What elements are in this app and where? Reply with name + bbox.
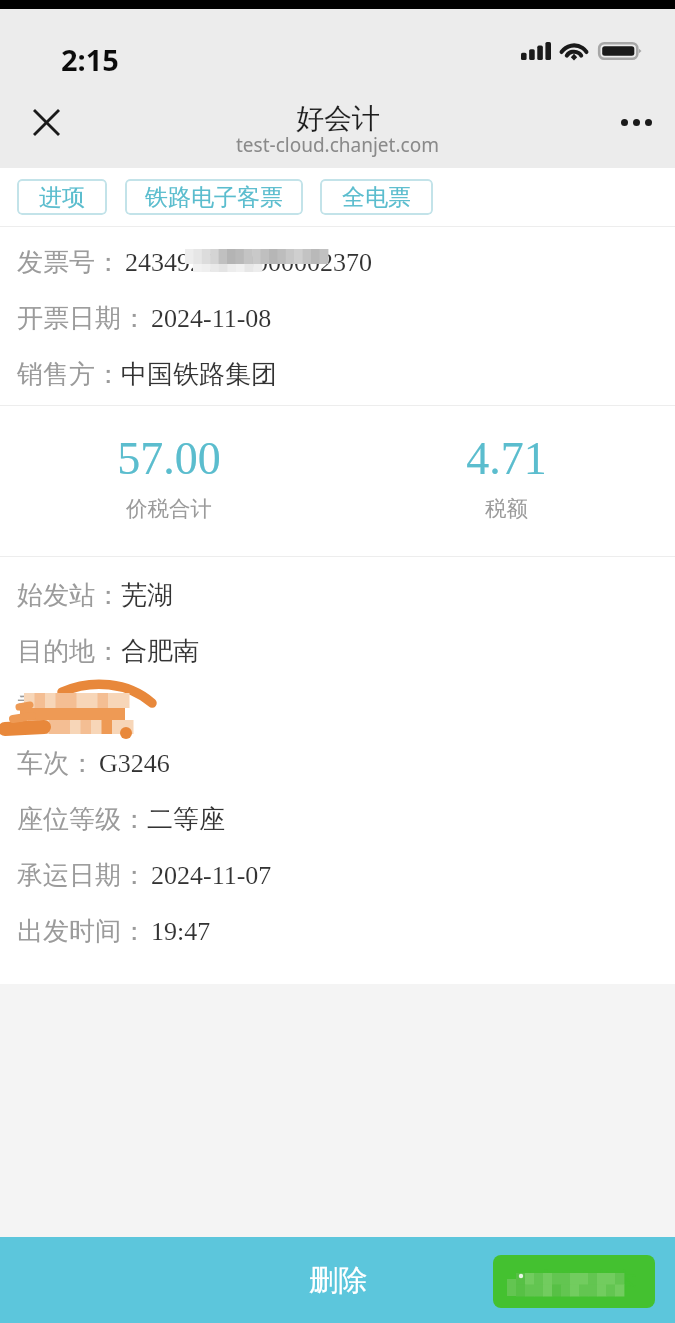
staticText: 19:47 <box>151 917 211 946</box>
staticText: 承运日期： <box>17 859 147 892</box>
button[interactable]: 导入到账本 <box>493 1255 655 1308</box>
staticText: 价税合计 <box>126 495 212 522</box>
button[interactable]: 进项 <box>17 179 107 215</box>
staticText: 车次： <box>17 747 95 780</box>
staticText: 芜湖 <box>121 579 173 612</box>
staticText: test-cloud.chanjet.com <box>236 132 439 158</box>
staticText: 铁路电子客票 <box>145 183 283 212</box>
staticText: 4.71 <box>466 433 547 484</box>
staticText: G3246 <box>99 749 170 778</box>
staticText: 2024-11-07 <box>151 861 272 890</box>
staticText: 进项 <box>39 183 85 212</box>
staticText: 57.00 <box>117 433 221 484</box>
staticText: 出发时间： <box>17 915 147 948</box>
staticText: 二等座 <box>147 803 225 836</box>
button[interactable]: More options <box>610 96 663 149</box>
staticText: 开票日期： <box>17 302 147 335</box>
staticText: 目的地： <box>17 635 121 668</box>
button[interactable]: 删除 <box>275 1250 401 1311</box>
staticText: 税额 <box>485 495 528 522</box>
staticText: 2:15 <box>61 40 119 79</box>
button[interactable]: 全电票 <box>320 179 433 215</box>
staticText: 好会计 <box>296 101 380 136</box>
staticText: 导入到账本 <box>512 1266 637 1297</box>
button[interactable]: 铁路电子客票 <box>125 179 303 215</box>
button[interactable]: Close <box>20 96 73 149</box>
staticText: 中国铁路集团 <box>121 358 277 391</box>
staticText: 乘车人： <box>17 691 121 724</box>
staticText: 座位等级： <box>17 803 147 836</box>
staticText: 2024-11-08 <box>151 304 272 333</box>
staticText: 2434920000000002370 <box>125 248 372 277</box>
staticText: 删除 <box>309 1262 367 1299</box>
staticText: 始发站： <box>17 579 121 612</box>
staticText: 全电票 <box>342 183 411 212</box>
staticText: 发票号： <box>17 246 121 279</box>
staticText: 合肥南 <box>121 635 199 668</box>
staticText: 销售方： <box>17 358 121 391</box>
